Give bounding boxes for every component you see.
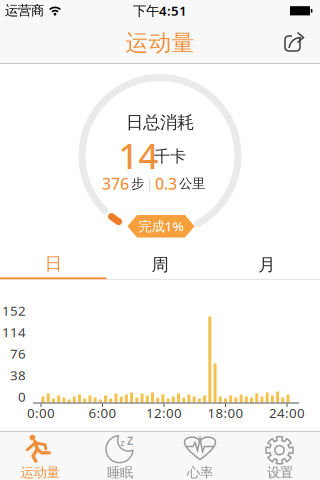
button[interactable]: 月: [213, 250, 320, 280]
staticText: 18:00: [207, 404, 243, 422]
staticText: 376: [102, 173, 129, 194]
staticText: 0: [18, 388, 26, 405]
staticText: |: [146, 175, 153, 192]
staticText: 114: [2, 323, 26, 341]
staticText: 14: [118, 132, 158, 178]
button[interactable]: 心率: [160, 431, 240, 480]
staticText: Z: [127, 433, 133, 448]
staticText: 设置: [267, 464, 293, 480]
button[interactable]: 运动量: [0, 431, 80, 480]
staticText: 76: [10, 345, 26, 362]
button[interactable]: 周: [107, 250, 213, 280]
button[interactable]: Share: [274, 23, 314, 63]
staticText: 睡眠: [107, 464, 133, 480]
staticText: 运营商: [5, 2, 44, 19]
staticText: 6:00: [88, 404, 116, 422]
staticText: 24:00: [269, 404, 305, 422]
staticText: z: [120, 438, 124, 448]
staticText: 月: [258, 254, 275, 275]
staticText: 日总消耗: [126, 112, 194, 133]
staticText: 公里: [179, 175, 205, 192]
staticText: 12:00: [146, 404, 182, 422]
button[interactable]: 设置: [240, 431, 320, 480]
staticText: 运动量: [20, 464, 59, 480]
staticText: 周: [151, 254, 168, 275]
staticText: 日: [45, 253, 62, 274]
staticText: 0.3: [155, 173, 177, 194]
staticText: 152: [2, 302, 26, 319]
button[interactable]: z: [80, 431, 160, 480]
staticText: 下午4:51: [133, 2, 187, 19]
staticText: 心率: [187, 464, 213, 480]
button[interactable]: 日: [0, 250, 107, 280]
staticText: 步: [131, 175, 144, 192]
staticText: 38: [10, 366, 26, 384]
staticText: 运动量: [125, 29, 194, 57]
staticText: 完成1%: [138, 217, 183, 235]
staticText: 0:00: [27, 404, 55, 422]
staticText: 千卡: [154, 147, 186, 166]
